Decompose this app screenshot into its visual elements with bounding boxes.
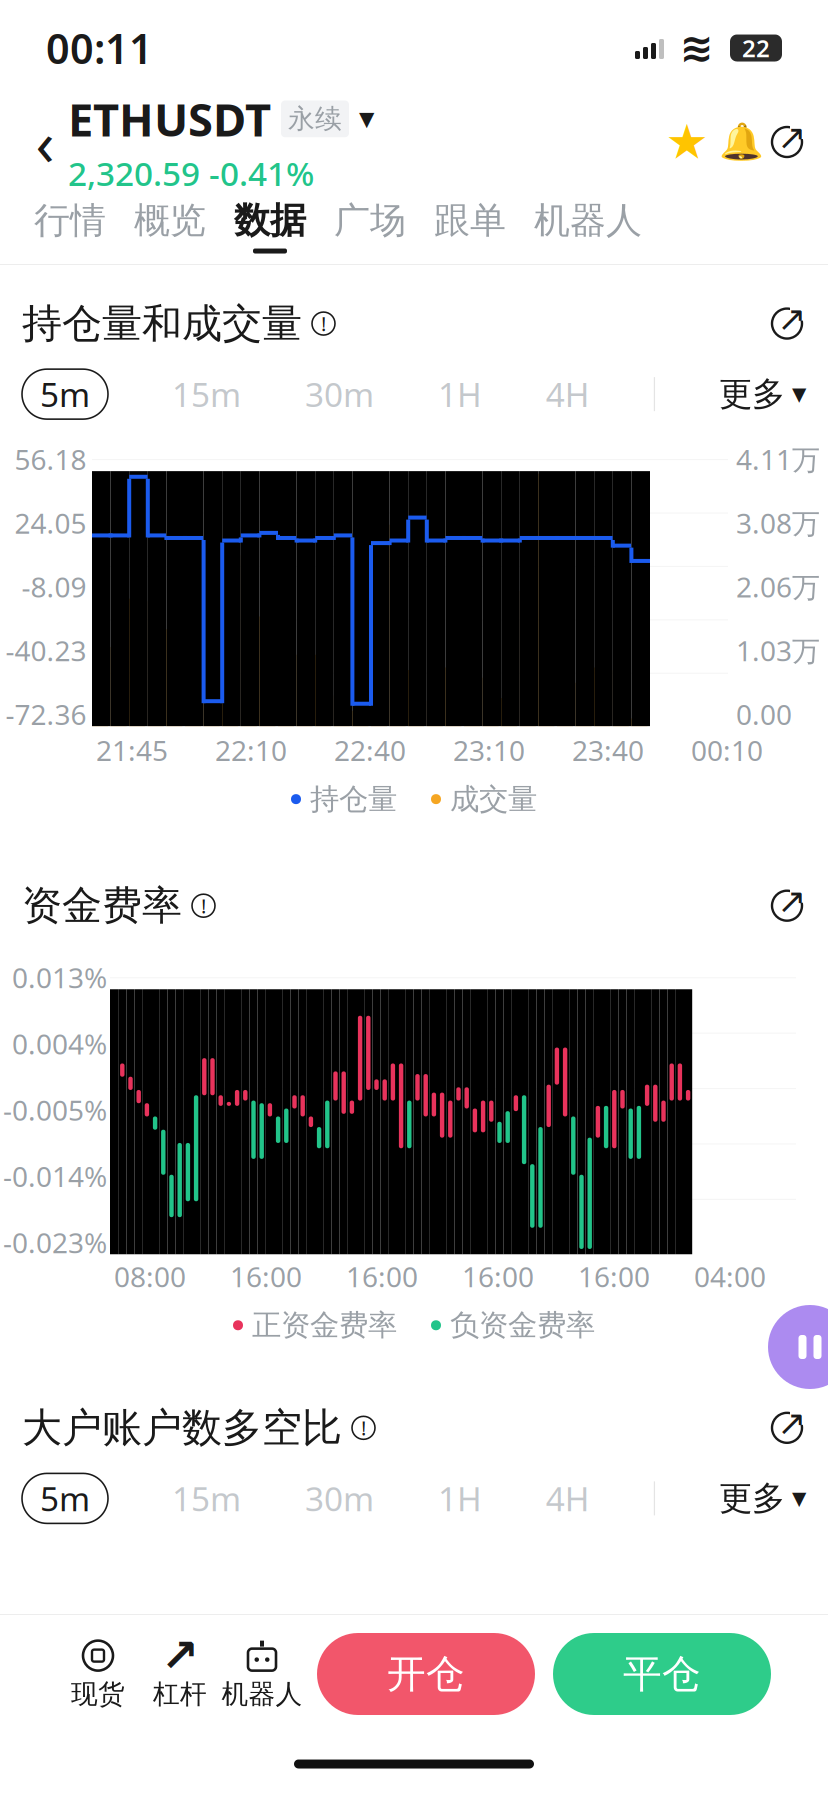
staticText: 资金费率 — [22, 881, 182, 930]
button[interactable]: 4H — [546, 1473, 590, 1523]
staticText: 24.05 — [14, 504, 86, 541]
staticText: 1.03万 — [736, 632, 820, 669]
staticText: 机器人 — [534, 198, 642, 243]
staticText: 23:10 — [453, 731, 525, 769]
staticText: ↗ — [161, 1630, 199, 1681]
button[interactable]: 平仓 — [553, 1633, 771, 1715]
staticText: 22:10 — [215, 731, 287, 769]
staticText: 0.013% — [12, 959, 107, 996]
staticText: 2.06万 — [736, 568, 820, 605]
button[interactable]: 5m — [22, 369, 108, 419]
button[interactable]: ↗ — [139, 1628, 221, 1720]
staticText: ▼ — [792, 383, 806, 405]
staticText: 30m — [305, 1476, 374, 1521]
button[interactable]: 1H — [438, 1473, 482, 1523]
staticText: 持仓量和成交量 — [22, 299, 302, 348]
staticText: 1H — [438, 1476, 482, 1521]
staticText: 23:40 — [572, 731, 644, 769]
staticText: 0.004% — [12, 1025, 107, 1062]
staticText: 4H — [546, 372, 590, 416]
staticText: 15m — [172, 1476, 241, 1521]
button[interactable]: Share — [768, 887, 806, 925]
staticText: -0.014% — [3, 1157, 107, 1195]
staticText: 16:00 — [346, 1258, 418, 1295]
button[interactable]: 5m — [22, 1473, 108, 1523]
staticText: 5m — [40, 372, 90, 416]
staticText: ↗ — [777, 881, 806, 920]
staticText: ! — [361, 1414, 366, 1441]
staticText: ‹ — [35, 101, 54, 183]
staticText: ! — [201, 892, 206, 919]
staticText: 4H — [546, 1476, 590, 1521]
staticText: 大户账户数多空比 — [22, 1403, 342, 1452]
staticText: 成交量 — [450, 781, 537, 817]
staticText: -0.023% — [3, 1224, 107, 1261]
staticText: 负资金费率 — [450, 1307, 595, 1343]
staticText: ↗ — [777, 117, 806, 157]
button[interactable]: Share — [768, 123, 806, 161]
staticText: 正资金费率 — [252, 1307, 397, 1343]
staticText: 30m — [305, 372, 374, 416]
button[interactable]: 概览 — [120, 198, 220, 253]
staticText: 平仓 — [623, 1650, 701, 1698]
button[interactable]: Favorite — [660, 115, 714, 169]
button[interactable]: Share — [768, 305, 806, 343]
staticText: 永续 — [288, 102, 342, 135]
staticText: 🔔 — [718, 121, 763, 162]
staticText: 跟单 — [434, 198, 506, 243]
staticText: ▼ — [792, 1488, 806, 1509]
button[interactable]: 机器人 — [520, 198, 656, 253]
button[interactable]: Back — [22, 112, 68, 172]
staticText: -72.36 — [5, 695, 86, 733]
staticText: ! — [321, 310, 326, 337]
button[interactable]: 30m — [305, 369, 374, 419]
button[interactable]: Share — [768, 1409, 806, 1447]
staticText: 开仓 — [387, 1650, 465, 1698]
button[interactable]: 1H — [438, 369, 482, 419]
button[interactable]: 更多 — [719, 1473, 806, 1523]
staticText: 现货 — [71, 1678, 125, 1710]
staticText: 4.11万 — [736, 440, 820, 478]
staticText: ↗ — [777, 1403, 806, 1442]
staticText: -0.005% — [3, 1091, 107, 1128]
staticText: 16:00 — [230, 1258, 302, 1295]
staticText: 持仓量 — [310, 781, 397, 817]
button[interactable]: 4H — [546, 369, 590, 419]
staticText: ▼ — [359, 107, 374, 130]
staticText: 概览 — [134, 198, 206, 243]
button[interactable]: 机器人 — [221, 1628, 303, 1720]
button[interactable]: 行情 — [20, 198, 120, 253]
staticText: 04:00 — [694, 1258, 766, 1295]
button[interactable]: 广场 — [320, 198, 420, 253]
button[interactable]: 开仓 — [317, 1633, 535, 1715]
staticText: ★ — [665, 115, 708, 169]
button[interactable]: 跟单 — [420, 198, 520, 253]
staticText: 行情 — [34, 198, 106, 243]
staticText: 22:40 — [334, 731, 406, 769]
button[interactable]: 现货 — [57, 1628, 139, 1720]
staticText: 00:11 — [46, 21, 153, 75]
button[interactable]: 更多 — [719, 369, 806, 419]
button[interactable]: Assistant — [768, 1305, 828, 1389]
staticText: 56.18 — [14, 440, 86, 478]
staticText: 16:00 — [578, 1258, 650, 1295]
staticText: 数据 — [234, 198, 306, 243]
staticText: 机器人 — [221, 1678, 302, 1710]
staticText: 2,320.59 -0.41% — [68, 151, 314, 195]
staticText: 更多 — [719, 374, 785, 415]
staticText: 0.00 — [736, 695, 792, 733]
staticText: ↗ — [777, 299, 806, 338]
staticText: 16:00 — [462, 1258, 534, 1295]
button[interactable]: 15m — [172, 1473, 241, 1523]
button[interactable]: 15m — [172, 369, 241, 419]
staticText: 3.08万 — [736, 504, 820, 541]
button[interactable]: 数据 — [220, 198, 320, 253]
button[interactable]: 30m — [305, 1473, 374, 1523]
staticText: 15m — [172, 372, 241, 416]
staticText: 22 — [742, 32, 770, 64]
button[interactable]: Alerts — [714, 115, 768, 169]
staticText: 5m — [40, 1476, 90, 1521]
staticText: 21:45 — [96, 731, 168, 769]
staticText: 1H — [438, 372, 482, 416]
staticText: ≋ — [680, 25, 714, 71]
